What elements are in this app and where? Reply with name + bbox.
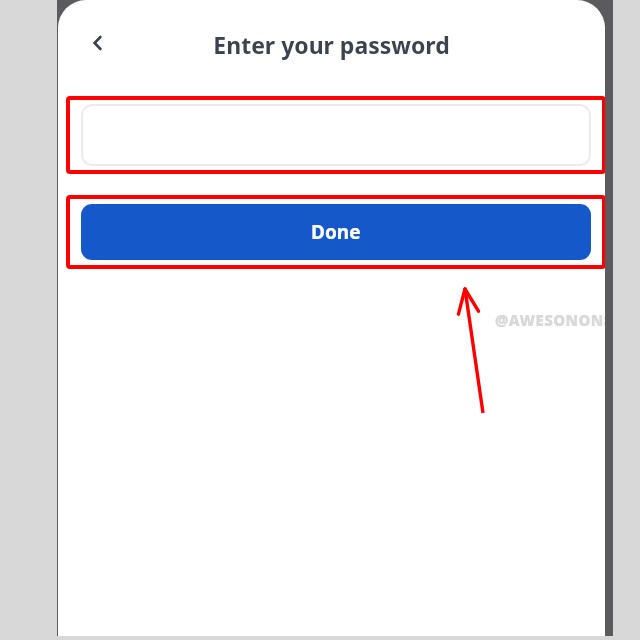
staticText: Done [311, 219, 361, 245]
staticText: Enter your password [58, 29, 605, 60]
button[interactable]: Done [81, 204, 591, 260]
staticText: @AWESONONSO [495, 310, 605, 330]
button[interactable] [81, 104, 591, 166]
button[interactable]: Back [78, 23, 118, 63]
